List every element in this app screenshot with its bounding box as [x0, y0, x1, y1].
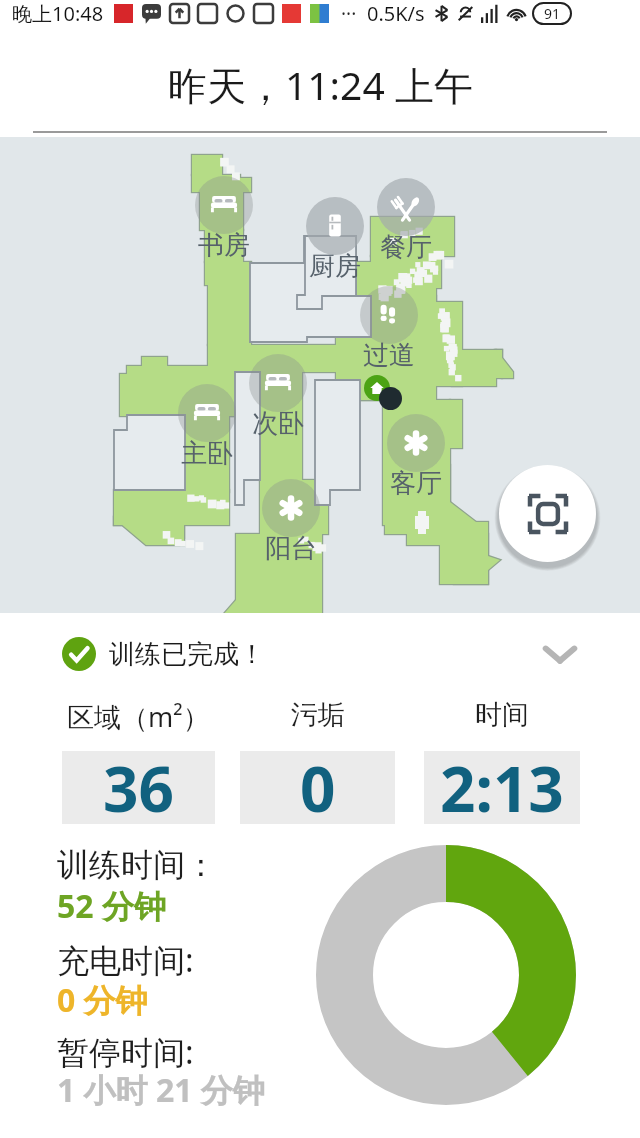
staticText: 时间: [475, 698, 529, 732]
staticText: 训练时间：: [57, 845, 217, 885]
staticText: 0 分钟: [57, 978, 148, 1022]
staticText: 厨房: [305, 250, 365, 283]
staticText: 36: [103, 746, 174, 819]
staticText: 客厅: [386, 467, 446, 500]
staticText: 主卧: [177, 437, 237, 470]
staticText: 2:13: [440, 746, 564, 819]
staticText: 阳台: [261, 532, 321, 565]
button[interactable]: 0: [240, 751, 395, 824]
staticText: 52 分钟: [57, 884, 166, 928]
staticText: 餐厅: [376, 231, 436, 264]
staticText: 昨天，11:24 上午: [168, 58, 473, 111]
staticText: 书房: [194, 229, 254, 262]
staticText: 0.5K/s: [367, 0, 425, 27]
button[interactable]: 2:13: [424, 751, 580, 824]
staticText: 次卧: [248, 407, 308, 440]
staticText: 训练已完成！: [109, 638, 265, 671]
staticText: 区域（m²）: [67, 698, 210, 735]
staticText: 充电时间:: [57, 938, 194, 982]
staticText: 1 小时 21 分钟: [57, 1068, 265, 1112]
button[interactable]: Recenter map: [499, 465, 596, 562]
button[interactable]: 训练已完成！: [62, 637, 265, 671]
staticText: 污垢: [291, 698, 345, 732]
button[interactable]: 36: [62, 751, 215, 824]
staticText: ···: [341, 1, 357, 27]
staticText: 暂停时间:: [57, 1030, 194, 1074]
button[interactable]: Collapse: [536, 630, 584, 678]
staticText: 0: [300, 746, 336, 819]
staticText: 晚上10:48: [12, 0, 104, 27]
staticText: 91: [544, 4, 561, 23]
staticText: 过道: [359, 339, 419, 372]
